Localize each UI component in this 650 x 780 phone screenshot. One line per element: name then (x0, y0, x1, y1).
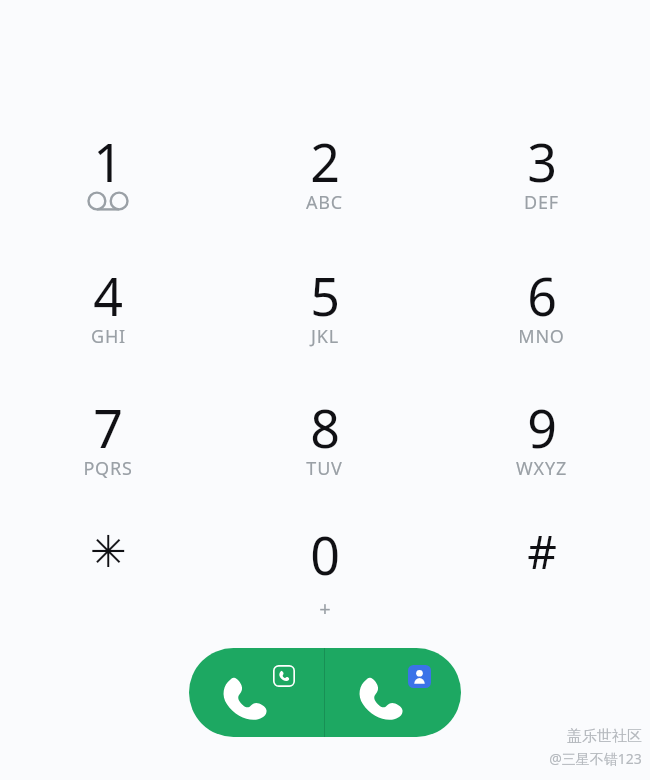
button[interactable]: 3 (433, 104, 650, 238)
staticText: 3 (527, 126, 557, 190)
staticText: @三星不错123 (549, 749, 642, 768)
button[interactable]: 8 (216, 372, 433, 501)
button[interactable]: 4 (0, 238, 216, 372)
staticText: # (527, 520, 557, 583)
staticText: 8 (310, 392, 340, 456)
staticText: 5 (310, 260, 340, 324)
button[interactable]: Call with contact (325, 648, 461, 737)
button[interactable]: 9 (433, 372, 650, 501)
button[interactable]: # (433, 501, 650, 626)
staticText: 1 (93, 126, 123, 190)
staticText: MNO (518, 324, 565, 349)
button[interactable]: 5 (216, 238, 433, 372)
staticText: 9 (527, 392, 557, 456)
staticText: TUV (306, 456, 343, 481)
button[interactable]: Call (189, 648, 324, 737)
staticText: PQRS (83, 456, 133, 481)
button[interactable]: 2 (216, 104, 433, 238)
button[interactable]: 1 (0, 104, 216, 238)
staticText: DEF (524, 190, 559, 215)
staticText: 0 (310, 519, 340, 583)
staticText: ABC (306, 190, 343, 215)
staticText: GHI (91, 324, 126, 349)
staticText: JKL (311, 324, 339, 349)
staticText: 2 (310, 126, 340, 190)
button[interactable]: 7 (0, 372, 216, 501)
button[interactable]: 0 (216, 501, 433, 626)
button[interactable]: ✳ (0, 501, 216, 626)
button[interactable]: 6 (433, 238, 650, 372)
staticText: + (319, 595, 331, 621)
staticText: 6 (527, 260, 557, 324)
staticText: WXYZ (516, 456, 567, 481)
staticText: ✳ (90, 526, 127, 577)
staticText: 4 (93, 260, 123, 324)
staticText: 盖乐世社区 (567, 727, 642, 746)
staticText: 7 (93, 392, 123, 456)
